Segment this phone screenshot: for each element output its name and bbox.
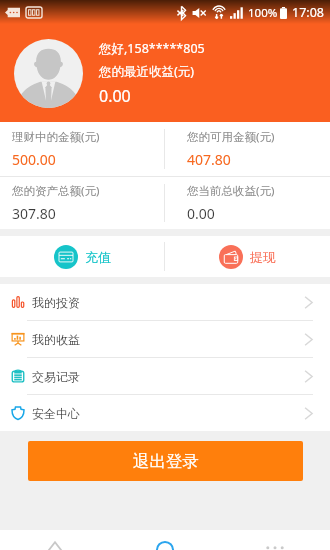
- staticText: 500.00: [12, 150, 56, 169]
- staticText: 您当前总收益(元): [187, 183, 275, 199]
- staticText: 我的投资: [32, 295, 80, 310]
- staticText: 您好,158*****805: [99, 40, 205, 57]
- staticText: 0.00: [187, 204, 215, 223]
- button[interactable]: 充值: [0, 236, 164, 277]
- button[interactable]: Back: [37, 541, 73, 550]
- button[interactable]: 交易记录: [0, 358, 330, 394]
- staticText: 安全中心: [32, 406, 80, 421]
- staticText: 退出登录: [133, 451, 199, 472]
- button[interactable]: 我的收益: [0, 321, 330, 357]
- button[interactable]: Home: [147, 541, 183, 550]
- staticText: 交易记录: [32, 369, 80, 384]
- staticText: 307.80: [12, 204, 56, 223]
- staticText: 407.80: [187, 150, 231, 169]
- staticText: 您的最近收益(元): [99, 63, 195, 80]
- staticText: 充值: [85, 249, 111, 265]
- button[interactable]: Profile photo: [14, 39, 83, 108]
- staticText: 0.00: [99, 85, 131, 107]
- button[interactable]: 提现: [165, 236, 330, 277]
- staticText: 理财中的金额(元): [12, 129, 100, 145]
- staticText: 我的收益: [32, 332, 80, 347]
- staticText: 100%: [248, 5, 278, 21]
- staticText: 提现: [250, 249, 276, 265]
- button[interactable]: 退出登录: [28, 441, 303, 481]
- staticText: 您的可用金额(元): [187, 129, 275, 145]
- button[interactable]: 我的投资: [0, 284, 330, 320]
- button[interactable]: 安全中心: [0, 395, 330, 431]
- staticText: 17:08: [292, 4, 324, 21]
- staticText: 您的资产总额(元): [12, 183, 100, 199]
- button[interactable]: Recents: [257, 541, 293, 550]
